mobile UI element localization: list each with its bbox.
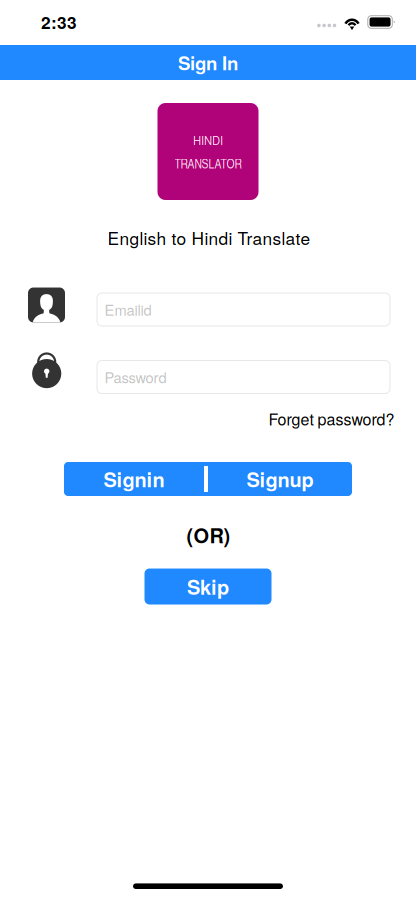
staticText: Emailid — [104, 299, 151, 320]
staticText: Signin — [103, 465, 164, 493]
staticText: TRANSLATOR — [174, 155, 241, 172]
button[interactable]: Sign In — [0, 45, 416, 80]
secureTextField[interactable]: Password — [97, 360, 390, 393]
staticText: 2:33 — [41, 10, 77, 34]
button[interactable]: Skip — [144, 568, 271, 604]
staticText: HINDI — [193, 132, 223, 148]
button[interactable]: Signup — [208, 462, 352, 496]
button[interactable]: Signin — [64, 462, 204, 496]
staticText: English to Hindi Translate — [107, 225, 310, 250]
staticText: Password — [104, 366, 166, 387]
staticText: Sign In — [178, 49, 238, 76]
staticText: Skip — [187, 572, 229, 601]
staticText: (OR) — [186, 521, 230, 549]
textField[interactable]: Emailid — [97, 293, 390, 326]
staticText: Signup — [246, 465, 313, 493]
button[interactable]: Forget password? — [268, 407, 394, 430]
staticText: Forget password? — [268, 407, 394, 430]
